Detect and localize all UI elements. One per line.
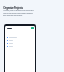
staticText: Archive, star or group your scanned: [3, 8, 34, 11]
button[interactable]: [7, 39, 33, 42]
button[interactable]: [7, 36, 33, 39]
button[interactable]: [7, 42, 33, 45]
staticText: Organize Projects: [3, 5, 23, 9]
staticText: into one tidy tap today.: [3, 13, 23, 16]
button[interactable]: New project: [31, 27, 34, 29]
button[interactable]: [7, 45, 33, 48]
staticText: documents into tidy project folders: [3, 11, 33, 14]
